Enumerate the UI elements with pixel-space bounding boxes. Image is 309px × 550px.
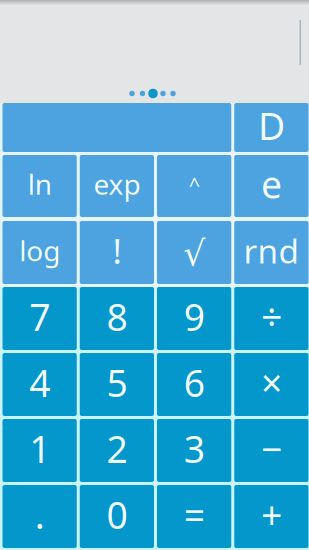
button[interactable]: . (2, 485, 77, 548)
button[interactable]: + (234, 485, 308, 548)
staticText: ! (112, 227, 121, 273)
button[interactable]: D (234, 103, 308, 152)
staticText: 8 (106, 292, 127, 341)
staticText: ln (28, 165, 52, 203)
button[interactable] (2, 103, 231, 152)
staticText: − (261, 424, 282, 473)
button[interactable]: e (234, 155, 308, 217)
staticText: 3 (184, 424, 205, 473)
button[interactable]: ^ (157, 155, 231, 217)
staticText: 0 (106, 490, 127, 539)
staticText: ^ (189, 171, 200, 197)
button[interactable]: 4 (2, 353, 77, 416)
staticText: 6 (184, 358, 205, 407)
button[interactable]: log (2, 221, 77, 284)
button[interactable]: rnd (234, 221, 308, 284)
button[interactable]: 0 (80, 485, 154, 548)
button[interactable]: = (157, 485, 231, 548)
staticText: log (19, 232, 60, 269)
button[interactable]: × (234, 353, 308, 416)
button[interactable]: 5 (80, 353, 154, 416)
button[interactable]: ÷ (234, 287, 308, 350)
button[interactable]: 6 (157, 353, 231, 416)
staticText: ÷ (261, 292, 282, 341)
staticText: 9 (184, 292, 205, 341)
button[interactable]: 2 (80, 419, 154, 482)
staticText: D (258, 101, 285, 150)
staticText: . (35, 490, 45, 539)
button[interactable]: 9 (157, 287, 231, 350)
button[interactable]: 1 (2, 419, 77, 482)
button[interactable]: − (234, 419, 308, 482)
staticText: + (261, 490, 282, 539)
button[interactable]: 3 (157, 419, 231, 482)
button[interactable]: 8 (80, 287, 154, 350)
staticText: exp (93, 165, 140, 203)
staticText: 4 (29, 358, 50, 407)
staticText: e (261, 159, 282, 209)
staticText: 2 (106, 424, 127, 473)
staticText: = (184, 490, 205, 539)
staticText: × (261, 358, 282, 407)
staticText: rnd (243, 228, 299, 273)
staticText: 7 (29, 292, 50, 341)
button[interactable]: ln (2, 155, 77, 217)
button[interactable]: 7 (2, 287, 77, 350)
staticText: 5 (106, 358, 127, 407)
button[interactable]: ! (80, 221, 154, 284)
staticText: 1 (29, 424, 50, 473)
button[interactable]: exp (80, 155, 154, 217)
staticText: √ (183, 234, 205, 273)
button[interactable]: √ (157, 221, 231, 284)
